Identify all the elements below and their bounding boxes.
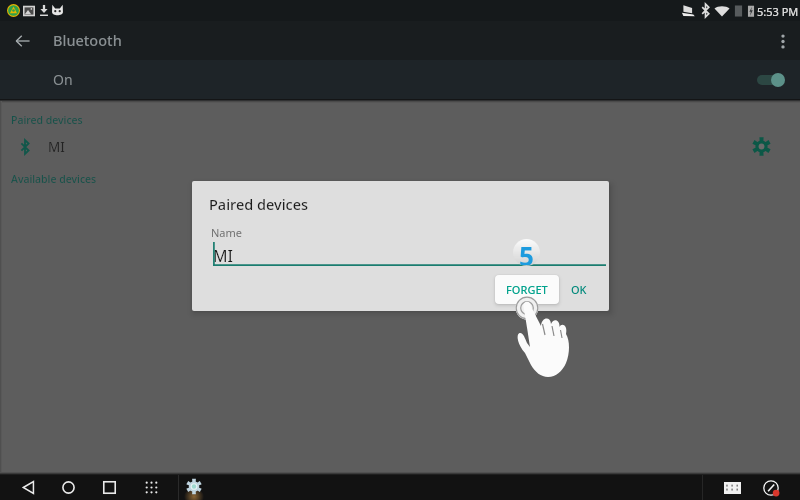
button[interactable]: On — [0, 60, 800, 99]
button[interactable]: All apps — [134, 475, 168, 500]
staticText: 5 — [519, 239, 534, 265]
staticText: Paired devices — [209, 194, 309, 214]
button[interactable]: MI — [0, 131, 800, 163]
button[interactable]: Navigate up — [7, 26, 37, 56]
button[interactable]: Do not disturb — [757, 475, 785, 500]
button[interactable]: Bluetooth on toggle — [757, 70, 785, 90]
staticText: Available devices — [11, 172, 97, 186]
staticText: 5:53 PM — [757, 4, 799, 19]
staticText: MI — [48, 138, 65, 156]
staticText: Name — [211, 225, 243, 240]
button[interactable]: Recent apps — [92, 475, 126, 500]
button[interactable]: OK — [564, 275, 594, 304]
button[interactable]: Home — [51, 475, 85, 500]
button[interactable]: Paired devices — [192, 181, 609, 311]
staticText: Bluetooth — [53, 30, 122, 50]
button[interactable]: Keyboard — [718, 475, 746, 500]
button[interactable]: FORGET — [495, 275, 559, 304]
button[interactable]: More options — [767, 25, 799, 57]
staticText: OK — [571, 282, 587, 297]
staticText: Paired devices — [11, 113, 83, 127]
button[interactable]: Settings — [180, 475, 208, 500]
staticText: MI — [213, 245, 233, 267]
button[interactable]: Back — [11, 475, 45, 500]
staticText: On — [53, 70, 73, 89]
button[interactable]: Device settings — [747, 132, 775, 160]
staticText: FORGET — [506, 282, 548, 297]
